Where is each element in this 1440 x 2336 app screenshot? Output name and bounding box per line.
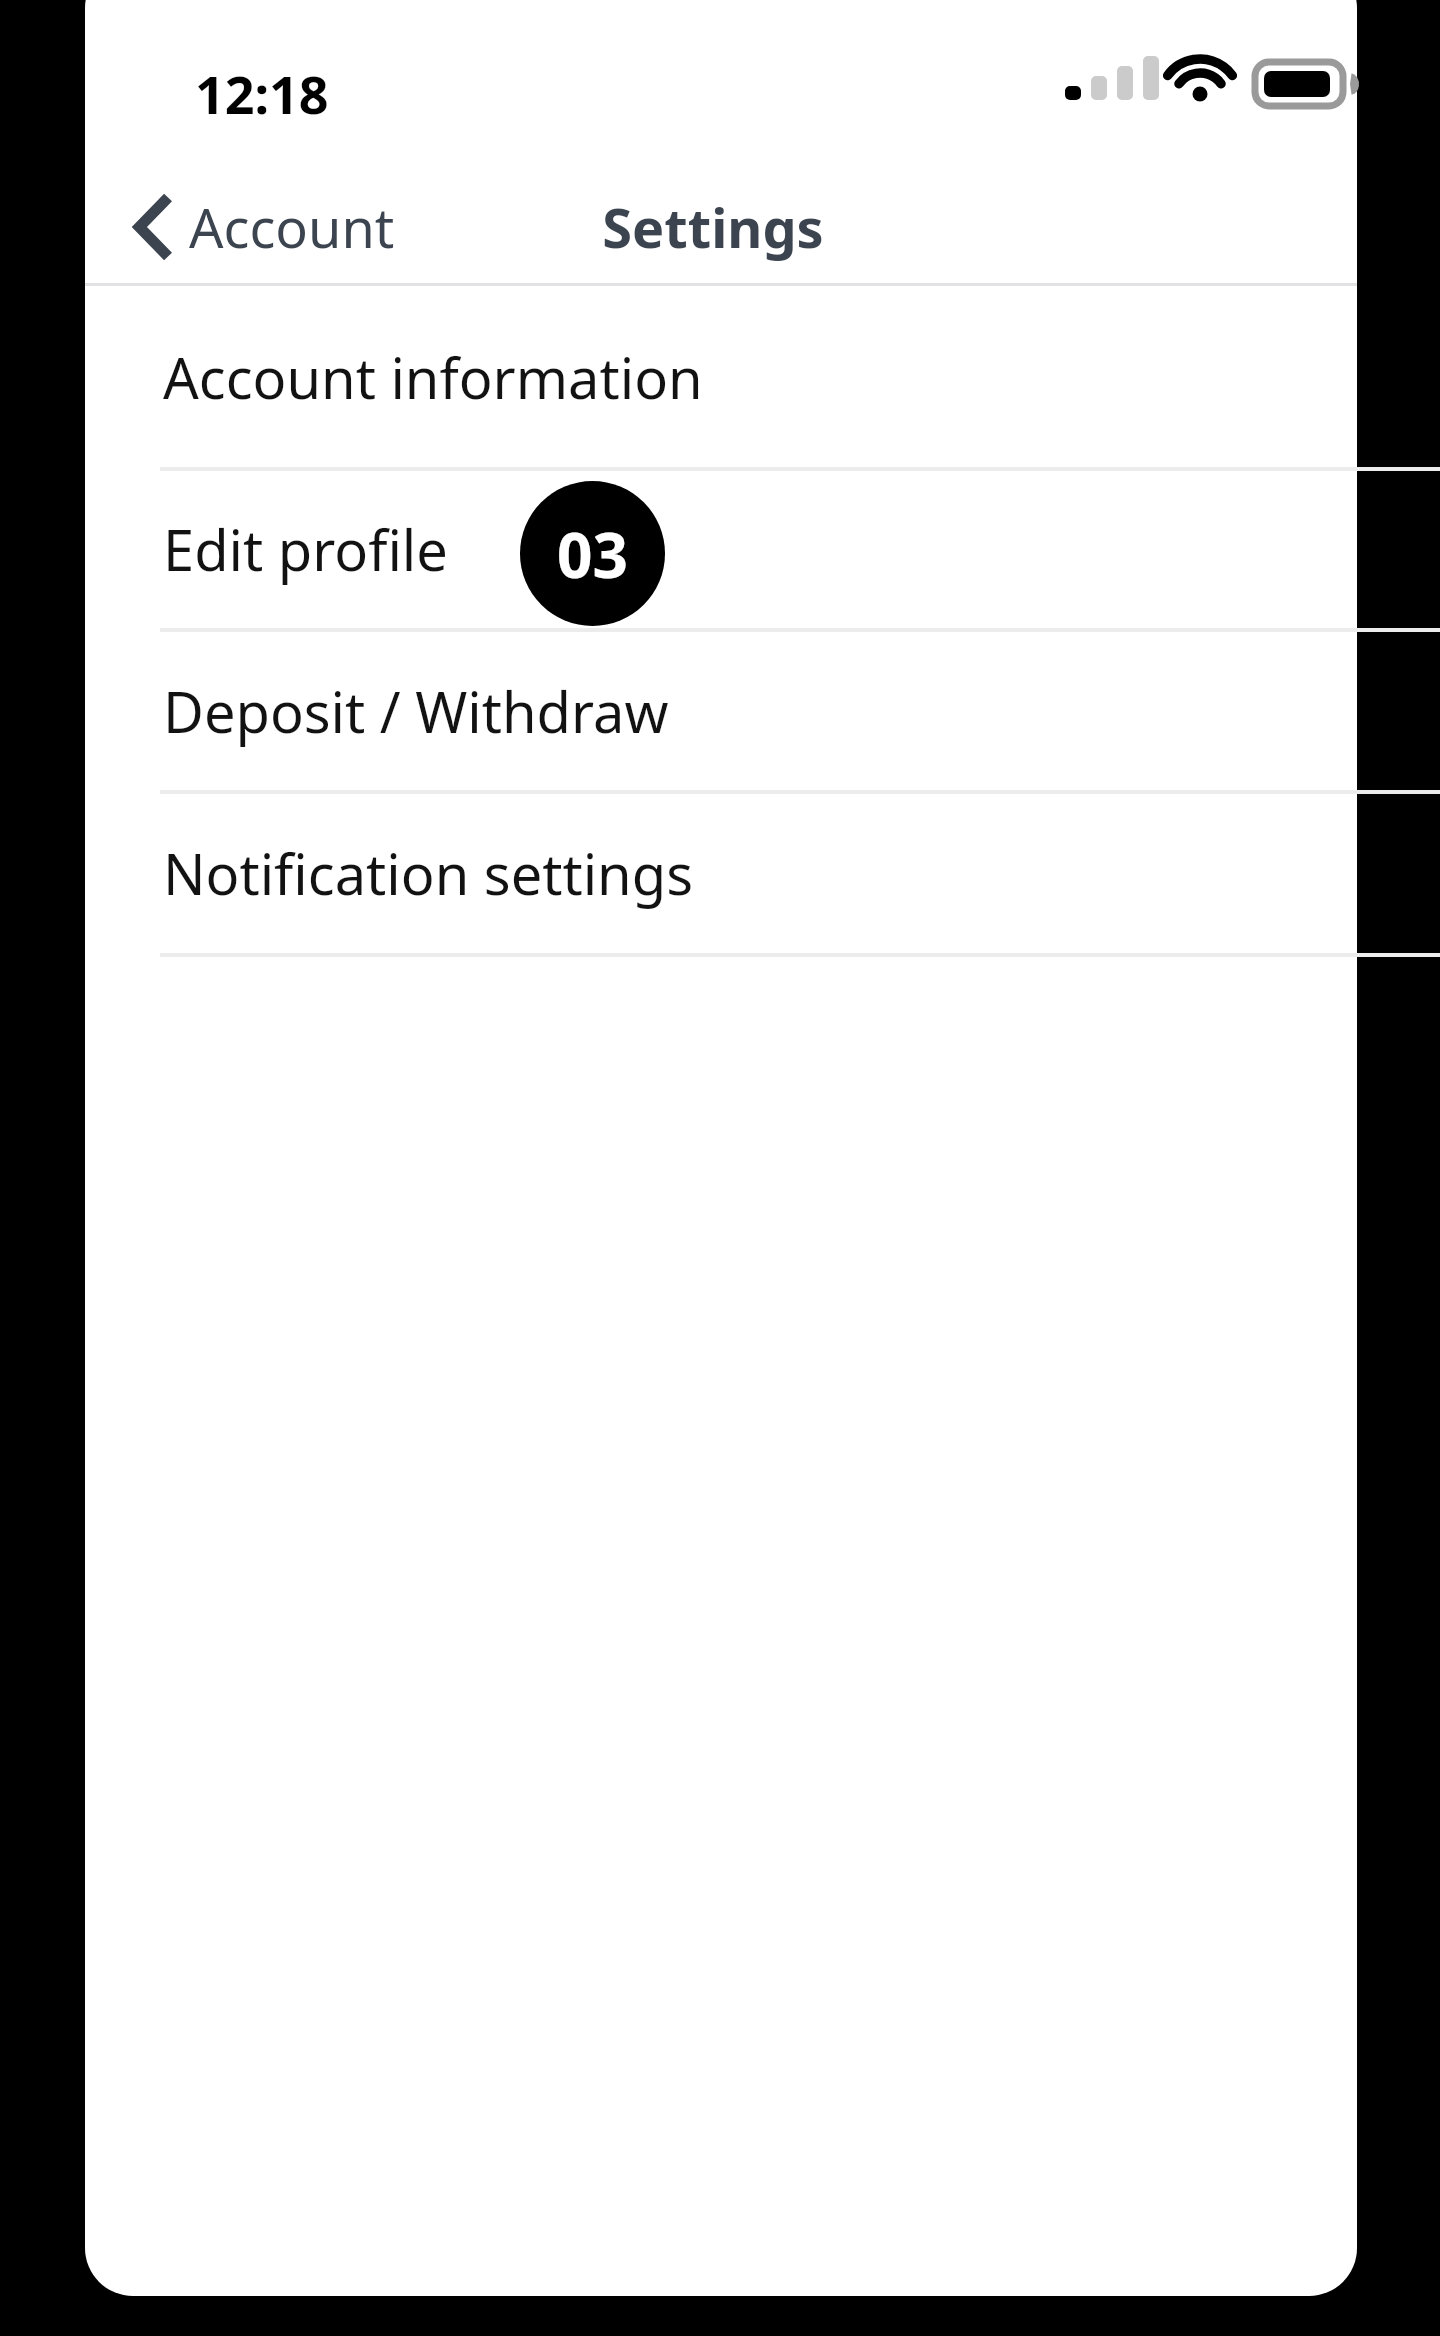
button[interactable]: Account — [85, 170, 395, 284]
staticText: Account — [189, 190, 395, 264]
staticText: Edit profile — [163, 511, 448, 587]
button[interactable]: Notification settings — [85, 793, 1357, 953]
button[interactable]: Deposit / Withdraw — [85, 631, 1357, 790]
staticText: 12:18 — [195, 58, 329, 129]
button[interactable]: Edit profile — [85, 470, 1357, 628]
staticText: 03 — [557, 512, 628, 596]
staticText: Settings — [602, 190, 824, 264]
staticText: Deposit / Withdraw — [163, 673, 669, 749]
staticText: Account information — [163, 339, 703, 415]
button[interactable]: Account information — [85, 286, 1357, 467]
staticText: Notification settings — [163, 835, 693, 911]
button[interactable]: Step 3 indicator — [520, 481, 665, 626]
